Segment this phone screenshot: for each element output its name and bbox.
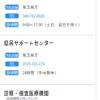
button[interactable]: 対応内容 <box>0 51 100 60</box>
staticText: 診察・検査医療機関 <box>4 89 49 96</box>
staticText: 0570-783-770 <box>22 61 44 66</box>
button[interactable]: TEL <box>0 60 100 68</box>
staticText: TEL <box>9 61 15 66</box>
button[interactable]: 対応内容 <box>0 3 100 11</box>
staticText: 対応内容 <box>6 5 18 10</box>
staticText: 受付時間 <box>6 22 18 27</box>
staticText: 埼玉県庁 <box>22 5 38 10</box>
staticText: 受付時間 <box>6 70 18 75</box>
staticText: 048-762-8026 <box>22 13 44 18</box>
staticText: 対応内容 <box>6 53 18 58</box>
staticText: 9:00〜17:30（土日、祝日を除く） <box>22 22 82 27</box>
staticText: 24時間（年中無休） <box>22 70 58 75</box>
button[interactable]: TEL <box>0 11 100 20</box>
staticText: 埼玉県庁 <box>22 53 38 58</box>
button[interactable]: 受付時間 <box>0 68 100 77</box>
button[interactable]: 受付時間 <box>0 20 100 29</box>
staticText: 県民サポートセンター <box>4 39 54 46</box>
staticText: TEL <box>9 13 15 18</box>
staticText: （医療機関を探したい方） <box>4 96 40 100</box>
